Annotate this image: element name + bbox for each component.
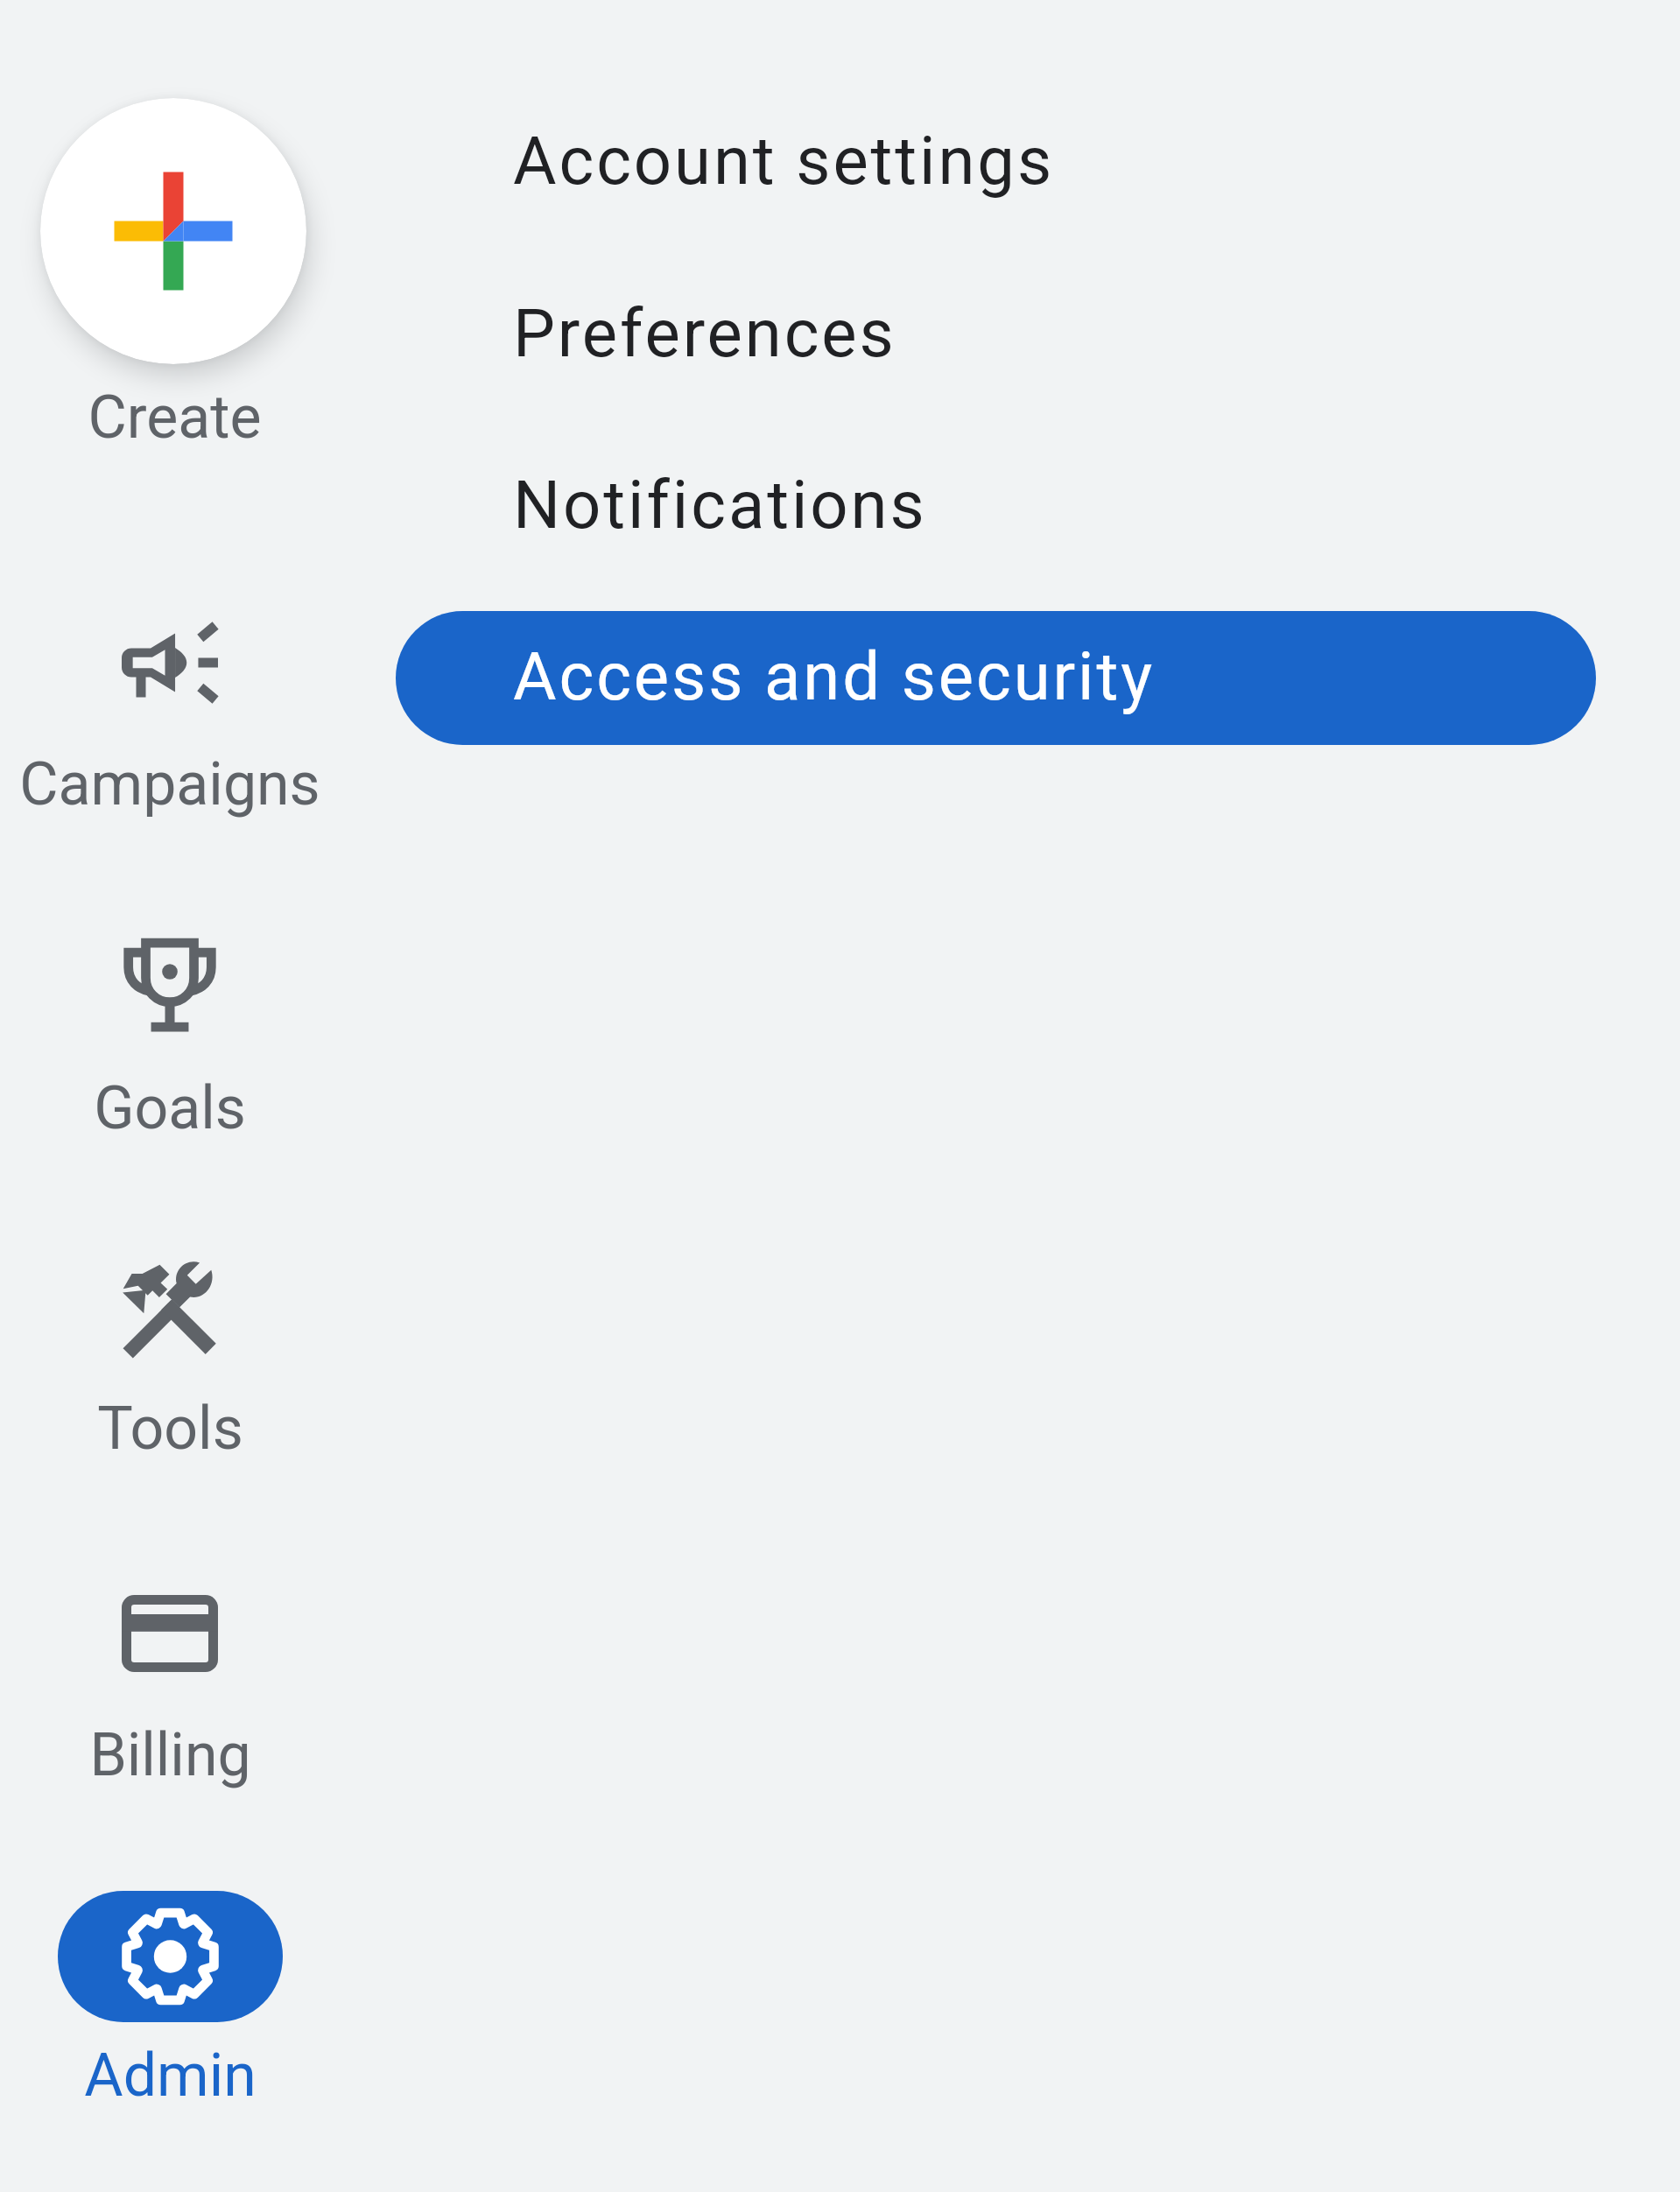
staticText: Tools bbox=[97, 1394, 243, 1464]
button[interactable]: Notifications bbox=[513, 466, 927, 544]
button[interactable]: Admin bbox=[58, 1891, 283, 2022]
button[interactable]: Create bbox=[40, 98, 306, 364]
button[interactable]: Access and security bbox=[396, 611, 1596, 745]
staticText: Billing bbox=[89, 1720, 251, 1790]
staticText: Create bbox=[88, 383, 262, 453]
staticText: Access and security bbox=[513, 637, 1156, 715]
staticText: Account settings bbox=[513, 122, 1055, 200]
staticText: Admin bbox=[84, 2041, 257, 2111]
staticText: Campaigns bbox=[19, 749, 320, 819]
staticText: Notifications bbox=[513, 466, 927, 544]
button[interactable]: Goals bbox=[58, 920, 282, 1051]
button[interactable]: Campaigns bbox=[58, 597, 282, 728]
button[interactable]: Account settings bbox=[513, 122, 1055, 200]
button[interactable]: Preferences bbox=[513, 294, 896, 372]
staticText: Preferences bbox=[513, 294, 896, 372]
button[interactable]: Billing bbox=[58, 1568, 282, 1699]
staticText: Goals bbox=[94, 1073, 246, 1143]
button[interactable]: Tools bbox=[58, 1246, 282, 1377]
